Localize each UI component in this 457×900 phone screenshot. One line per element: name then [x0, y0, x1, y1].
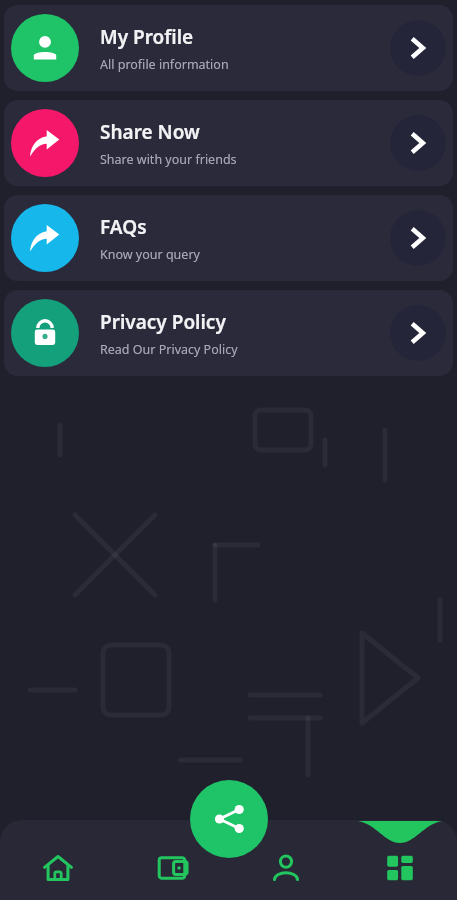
- button[interactable]: Open My Profile: [390, 20, 446, 76]
- button[interactable]: Open Share Now: [390, 115, 446, 171]
- staticText: Read Our Privacy Policy: [100, 341, 238, 358]
- button[interactable]: Share Now: [4, 100, 453, 186]
- button[interactable]: Profile: [229, 820, 343, 900]
- staticText: Privacy Policy: [100, 309, 226, 335]
- button[interactable]: FAQs: [4, 195, 453, 281]
- staticText: FAQs: [100, 214, 147, 240]
- staticText: Share Now: [100, 119, 200, 145]
- staticText: Know your query: [100, 246, 200, 263]
- button[interactable]: Privacy Policy: [4, 290, 453, 376]
- button[interactable]: Share: [190, 780, 268, 858]
- button[interactable]: Dashboard: [343, 820, 457, 900]
- button[interactable]: Open Privacy Policy: [390, 305, 446, 361]
- button[interactable]: My Profile: [4, 5, 453, 91]
- staticText: My Profile: [100, 24, 194, 50]
- button[interactable]: Open FAQs: [390, 210, 446, 266]
- staticText: Share with your friends: [100, 151, 237, 168]
- staticText: All profile information: [100, 56, 229, 73]
- button[interactable]: Wallet: [115, 820, 229, 900]
- button[interactable]: Home: [0, 820, 115, 900]
